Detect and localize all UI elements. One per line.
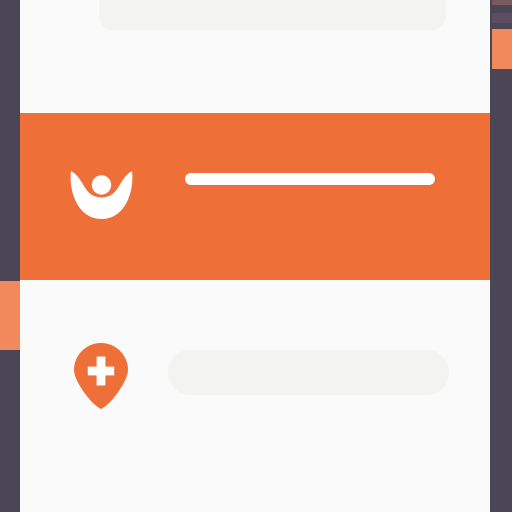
button[interactable]: Featured: [20, 113, 490, 280]
button[interactable]: Add a place: [20, 280, 490, 412]
